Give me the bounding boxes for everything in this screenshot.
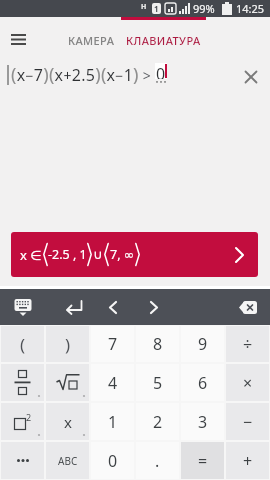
button[interactable] [57,291,91,323]
staticText: x [64,412,72,432]
staticText: ÷ [243,333,253,355]
button[interactable]: 2 [135,402,180,441]
staticText: = [198,450,208,472]
button[interactable]: 4 [90,363,135,402]
staticText: 5 [153,372,163,394]
button[interactable]: = [180,441,225,480]
staticText: 6 [198,372,208,394]
staticText: 0 [156,63,166,79]
button[interactable]: 9 [180,325,225,363]
button[interactable]: 1 [90,402,135,441]
staticText: 14:25 [236,1,265,16]
button[interactable]: ) [45,325,90,363]
staticText: ) [65,333,71,356]
button[interactable] [238,64,264,90]
button[interactable]: КАМЕРА [60,27,123,53]
button[interactable] [6,291,40,323]
button[interactable]: ABC [45,441,90,480]
button[interactable]: КЛАВИАТУРА [120,27,207,53]
staticText: 9 [198,333,208,355]
button[interactable] [231,291,265,323]
button[interactable]: 5 [135,363,180,402]
button[interactable]: 0 [90,441,135,480]
staticText: 3 [198,411,208,433]
staticText: 7, ∞ [110,246,135,263]
staticText: -2.5 , 1 [48,246,87,263]
staticText: ∪ [93,247,103,262]
staticText: 1 [154,3,159,14]
button[interactable]: x ∈ [11,232,258,277]
staticText: + [243,450,253,472]
staticText: КАМЕРА [68,33,115,48]
button[interactable] [137,291,171,323]
button[interactable]: . [135,441,180,480]
button[interactable] [0,441,45,480]
staticText: 7 [108,333,118,355]
staticText: x ∈ [20,246,42,264]
staticText: ABC [58,454,78,468]
button[interactable]: 2 [0,402,45,441]
staticText: − [243,411,253,433]
staticText: 8 [153,333,163,355]
button[interactable] [45,363,90,402]
button[interactable]: + [225,441,270,480]
staticText: . [155,450,160,472]
button[interactable]: 3 [180,402,225,441]
staticText: 4 [108,372,118,394]
staticText: H [141,2,147,12]
button[interactable]: 8 [135,325,180,363]
staticText: × [243,372,253,394]
button[interactable]: 6 [180,363,225,402]
button[interactable]: × [225,363,270,402]
staticText: 99% [193,1,215,16]
staticText: ( [20,333,26,356]
button[interactable]: x [45,402,90,441]
staticText: 2 [26,411,32,423]
button[interactable]: ( [0,325,45,363]
button[interactable]: ÷ [225,325,270,363]
staticText: 0 [108,450,118,472]
button[interactable] [0,363,45,402]
staticText: 2 [153,411,163,433]
staticText: КЛАВИАТУРА [126,33,201,48]
staticText: (x−7)(x+2.5)(x−1) > [11,62,155,87]
button[interactable]: 7 [90,325,135,363]
button[interactable] [4,27,32,51]
staticText: 1 [108,411,118,433]
button[interactable] [96,291,130,323]
button[interactable]: − [225,402,270,441]
